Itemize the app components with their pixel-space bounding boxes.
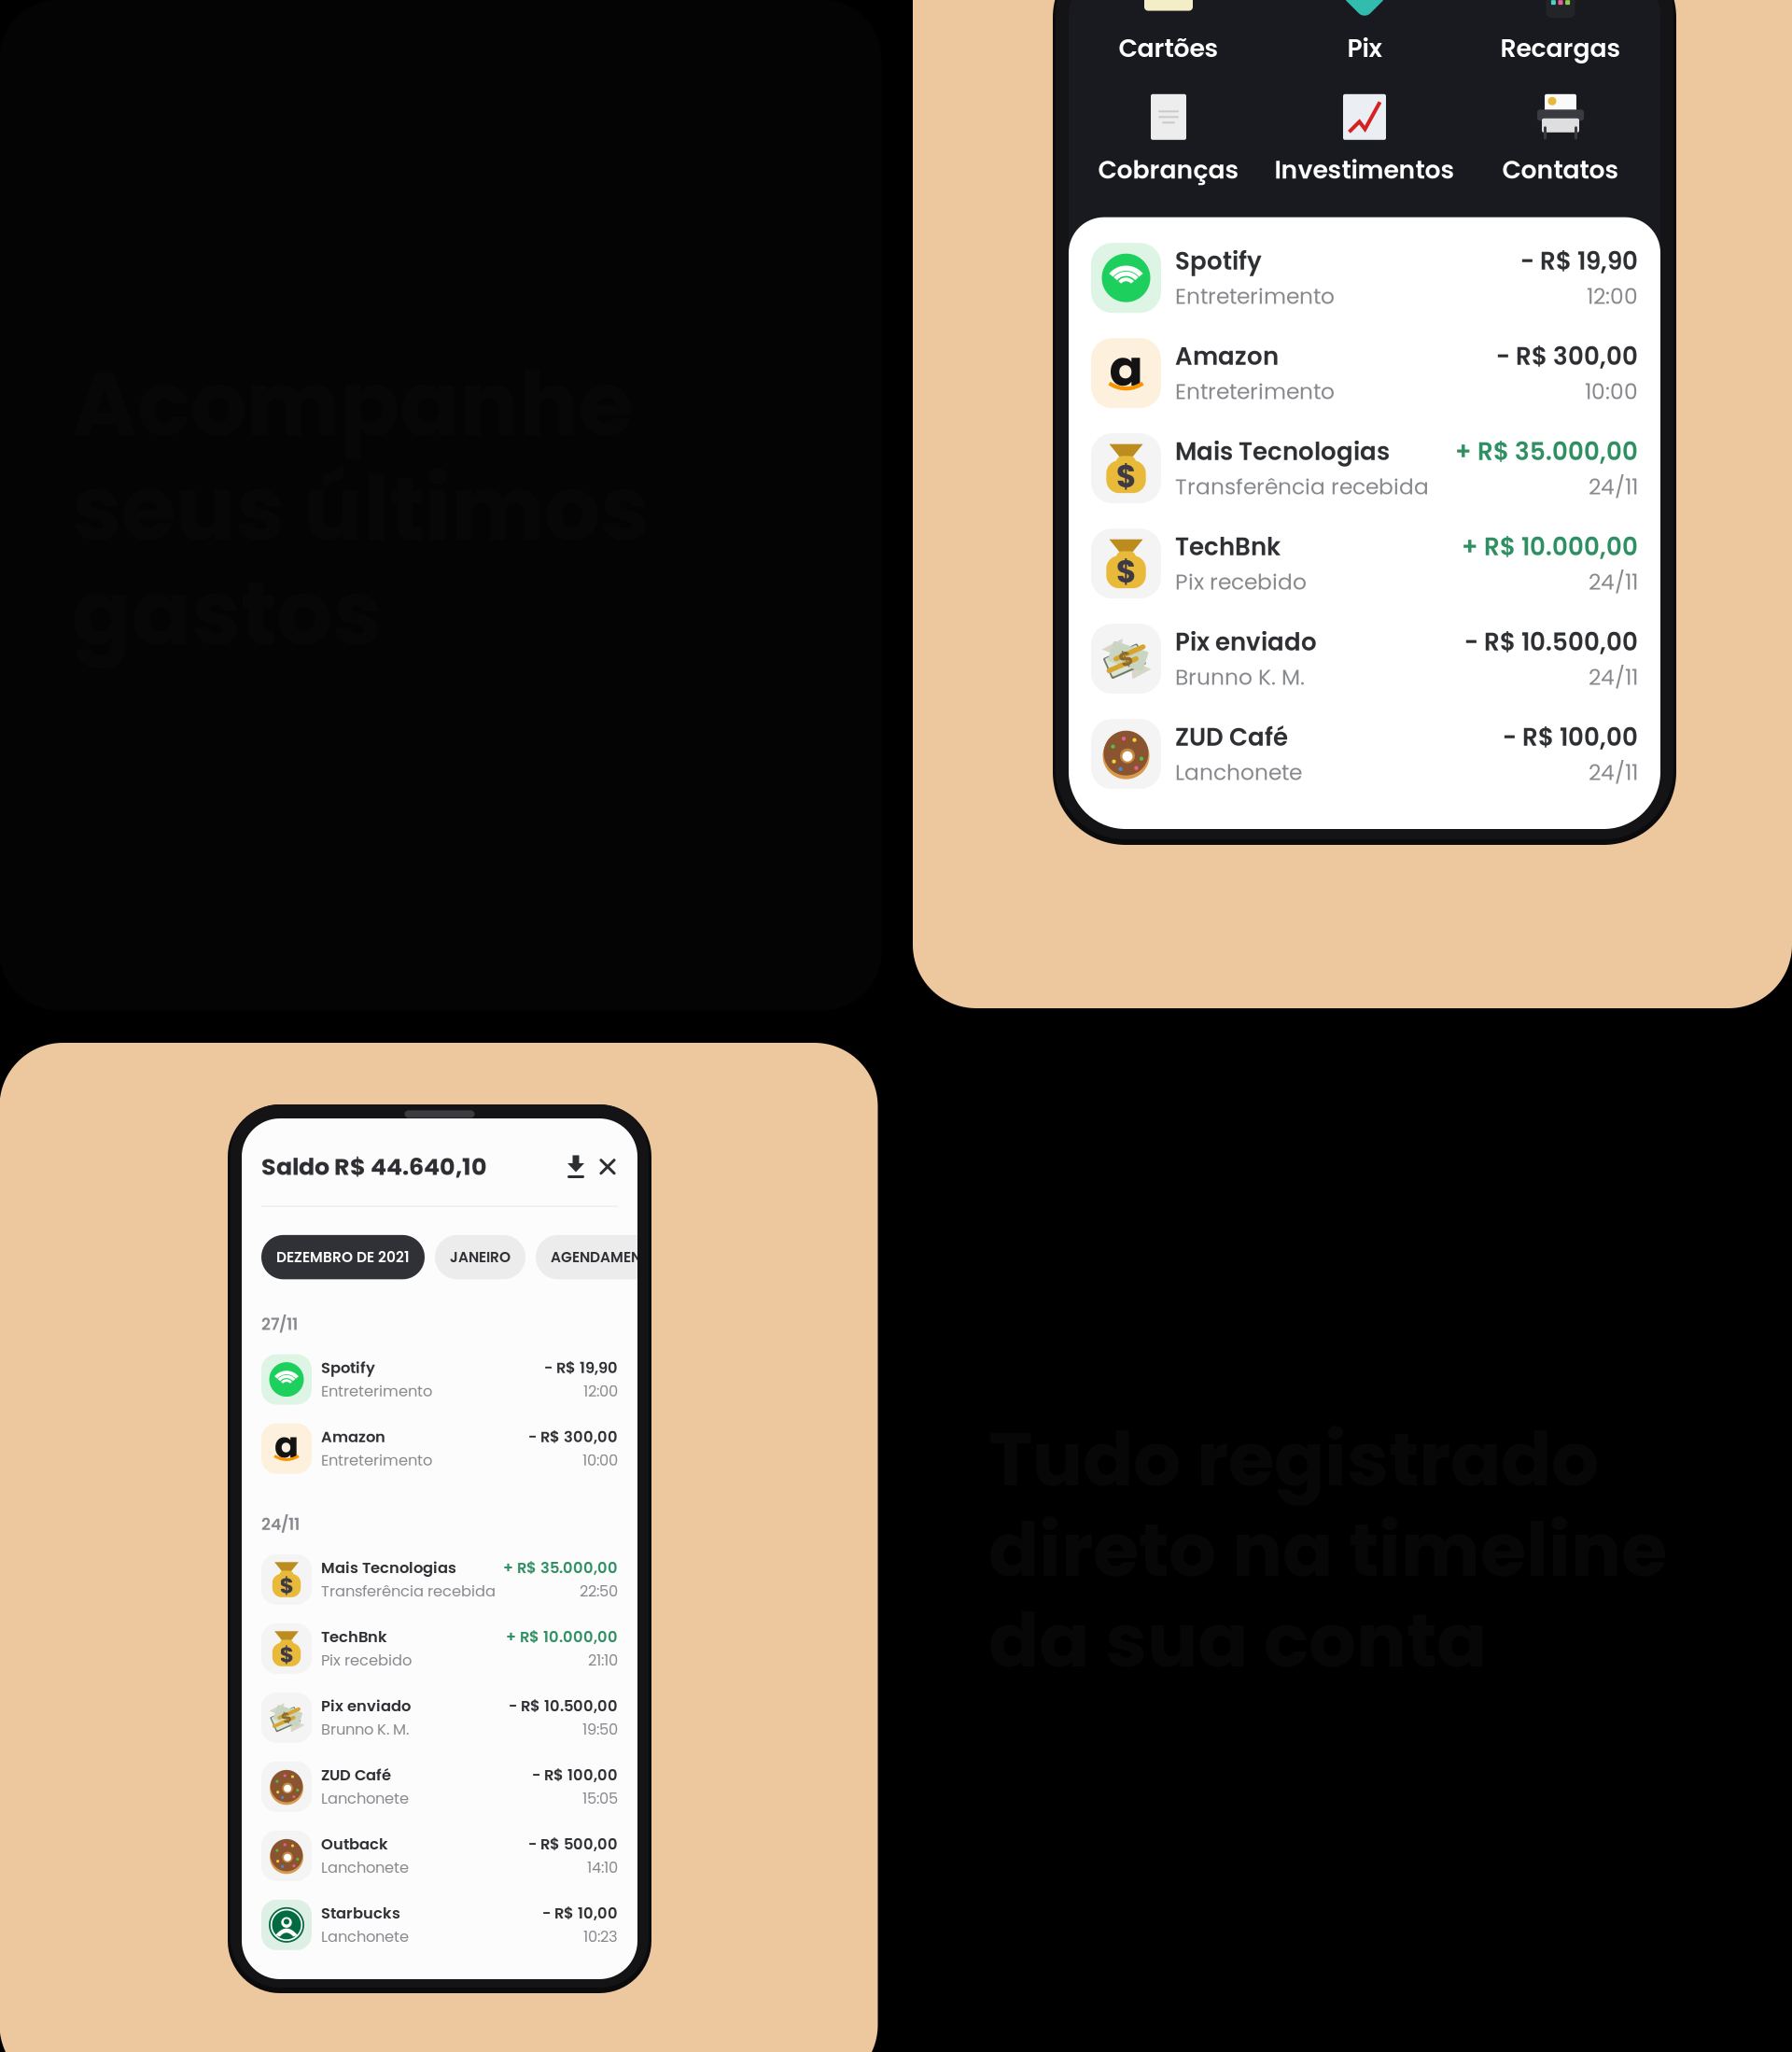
button[interactable]: $ [261,1683,618,1752]
staticText: $ [280,1570,294,1601]
staticText: + R$ 10.000,00 [1462,530,1638,564]
staticText: Pix enviado [1175,625,1317,659]
staticText: Pix recebido [321,1650,412,1671]
staticText: 24/11 [1589,662,1638,693]
staticText: Pix [1347,31,1382,66]
button[interactable]: $ [1091,611,1638,706]
staticText: 24/11 [261,1513,300,1536]
button[interactable]: Spotify [261,1345,618,1414]
staticText: $ [282,1708,291,1728]
button[interactable]: a [261,1414,618,1483]
staticText: JANEIRO [450,1247,511,1267]
staticText: Transferência recebida [1175,472,1429,502]
staticText: Lanchonete [321,1788,409,1809]
button[interactable]: Baixar extrato [561,1152,591,1182]
staticText: - R$ 19,90 [1520,244,1638,278]
staticText: Recargas [1500,31,1621,66]
button[interactable]: Contatos [1463,94,1659,187]
staticText: - R$ 10.500,00 [1464,625,1638,659]
staticText: 24/11 [1589,472,1638,502]
staticText: Lanchonete [321,1857,409,1878]
staticText: Investimentos [1274,152,1455,187]
button[interactable]: Spotify [1091,230,1638,326]
button[interactable]: $ [1091,516,1638,611]
staticText: ZUD Café [321,1764,391,1786]
staticText: 27/11 [261,1313,298,1336]
staticText: Spotify [321,1357,375,1378]
staticText: Pix recebido [1175,567,1307,597]
staticText: + R$ 10.000,00 [506,1626,618,1648]
button[interactable]: Cobranças [1071,94,1267,187]
staticText: Mais Tecnologias [1175,435,1390,469]
button[interactable]: DEZEMBRO DE 2021 [261,1235,425,1279]
staticText: Amazon [321,1426,385,1448]
staticText: Spotify [1175,244,1262,278]
staticText: Amazon [1175,339,1279,373]
button[interactable]: AGENDAMENTOS [536,1235,684,1279]
staticText: 24/11 [1589,567,1638,597]
button[interactable]: Fechar [591,1152,624,1182]
staticText: Entreterimento [321,1380,432,1402]
button[interactable]: $ [261,1545,618,1614]
staticText: 21:10 [588,1650,618,1671]
staticText: Outback [321,1834,388,1855]
staticText: 14:10 [587,1857,618,1878]
staticText: 10:00 [582,1450,618,1471]
staticText: + R$ 35.000,00 [503,1557,618,1578]
staticText: TechBnk [1175,530,1281,564]
staticText: 12:00 [1587,281,1638,312]
button[interactable]: Recargas [1463,0,1659,66]
staticText: Entreterimento [321,1450,432,1471]
staticText: Transferência recebida [321,1581,496,1602]
button[interactable]: ZUD Café [1091,706,1638,802]
staticText: Brunno K. M. [1175,662,1305,693]
staticText: TechBnk [321,1626,387,1648]
button[interactable]: $ [1091,421,1638,516]
staticText: $ [1116,455,1136,498]
staticText: 10:00 [1585,376,1638,407]
staticText: $ [1116,551,1136,593]
staticText: $ [280,1639,294,1670]
staticText: Cobranças [1098,152,1239,187]
staticText: $ [1120,645,1133,673]
staticText: Brunno K. M. [321,1719,409,1740]
staticText: Lanchonete [321,1926,409,1947]
staticText: Entreterimento [1175,281,1335,312]
button[interactable]: Pix [1267,0,1463,66]
staticText: Cartões [1119,31,1218,66]
button[interactable]: Cartões [1071,0,1267,66]
staticText: DEZEMBRO DE 2021 [276,1247,410,1267]
staticText: 22:50 [580,1581,618,1602]
staticText: - R$ 19,90 [544,1357,618,1378]
staticText: - R$ 300,00 [1496,339,1638,373]
staticText: + R$ 35.000,00 [1455,435,1638,469]
staticText: AGENDAMENTOS [551,1247,669,1267]
staticText: ZUD Café [1175,720,1288,754]
button[interactable]: $ [261,1614,618,1683]
staticText: 15:05 [582,1788,618,1809]
staticText: a [274,1420,299,1470]
staticText: Starbucks [321,1903,400,1924]
staticText: - R$ 100,00 [1503,720,1638,754]
button[interactable]: Investimentos [1267,94,1463,187]
staticText: 24/11 [1589,757,1638,788]
staticText: - R$ 100,00 [532,1764,618,1786]
button[interactable]: Starbucks [261,1890,618,1959]
staticText: Mais Tecnologias [321,1557,456,1578]
staticText: - R$ 300,00 [528,1426,618,1448]
button[interactable]: ZUD Café [261,1752,618,1821]
button[interactable]: Outback [261,1821,618,1890]
button[interactable]: JANEIRO [435,1235,525,1279]
staticText: 10:23 [583,1926,618,1947]
staticText: Entreterimento [1175,376,1335,407]
staticText: Contatos [1502,152,1619,187]
staticText: Saldo R$ 44.640,10 [261,1150,487,1183]
staticText: - R$ 500,00 [528,1834,618,1855]
button[interactable]: a [1091,326,1638,421]
staticText: - R$ 10.500,00 [509,1695,618,1717]
